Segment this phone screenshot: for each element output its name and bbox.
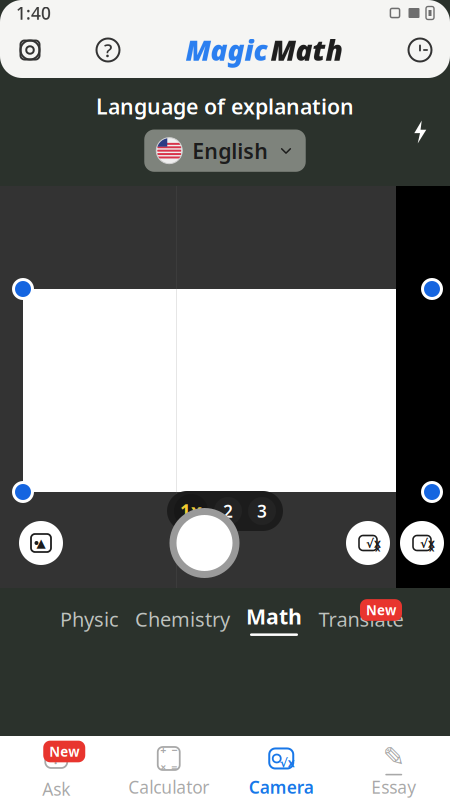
staticText: Physic (60, 606, 119, 632)
staticText: 1:40 (16, 1, 51, 24)
button[interactable]: Solve equation (400, 521, 444, 565)
button[interactable]: History (398, 28, 442, 72)
staticText: x (375, 542, 380, 554)
staticText: √x (366, 535, 381, 551)
staticText: √x (420, 535, 435, 551)
staticText: Translate (318, 606, 403, 632)
staticText: Camera (249, 775, 314, 798)
staticText: Math (246, 602, 302, 630)
staticText: Ask (42, 777, 70, 800)
staticText: Math (270, 31, 342, 69)
button[interactable]: 2 (214, 497, 242, 525)
staticText: ? (104, 38, 112, 62)
staticText: Chemistry (135, 606, 230, 632)
staticText: ▲ (36, 536, 45, 550)
staticText: English (192, 136, 268, 165)
button[interactable]: Solve text problem (346, 521, 390, 565)
button[interactable]: 3 (248, 497, 276, 525)
button[interactable]: Settings (8, 28, 52, 72)
button[interactable]: Help (86, 28, 130, 72)
staticText: Language of explanation (96, 92, 354, 120)
button[interactable]: English (144, 129, 306, 172)
button[interactable]: Physic (60, 600, 119, 638)
button[interactable]: Shutter (169, 508, 239, 578)
staticText: Calculator (128, 775, 209, 798)
staticText: + (160, 743, 166, 757)
staticText: New (366, 601, 396, 619)
button[interactable]: Math (246, 602, 302, 636)
staticText: Magic (185, 31, 267, 69)
button[interactable]: Translate (318, 596, 404, 642)
button[interactable]: √x (225, 745, 337, 798)
staticText: = (171, 760, 177, 774)
button[interactable]: Gallery (19, 521, 63, 565)
staticText: Essay (371, 775, 416, 798)
button[interactable]: + (112, 745, 225, 798)
button[interactable]: Flash (398, 110, 442, 154)
staticText: x (429, 542, 434, 554)
staticText: ? (53, 749, 60, 768)
button[interactable]: 1x (174, 494, 208, 528)
staticText: 1x (180, 499, 202, 523)
staticText: 2 (223, 499, 233, 522)
staticText: ✎ (383, 742, 405, 772)
button[interactable]: ? (0, 743, 112, 800)
staticText: × (160, 760, 166, 774)
staticText: √x (280, 755, 295, 770)
staticText: New (49, 743, 79, 760)
staticText: − (171, 743, 177, 757)
button[interactable]: ✎ (337, 745, 450, 798)
button[interactable]: Chemistry (135, 600, 230, 638)
staticText: 3 (257, 499, 267, 522)
